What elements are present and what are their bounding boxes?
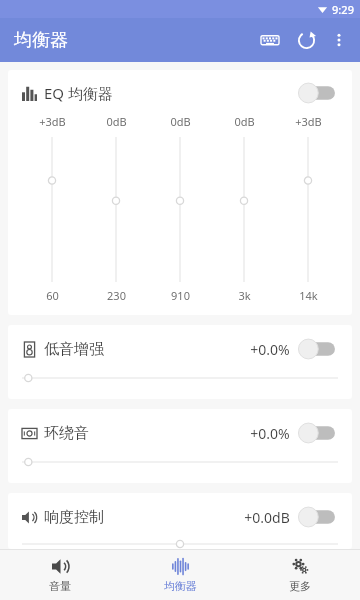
staticText: +0.0% [250, 340, 290, 359]
staticText: 环绕音 [44, 424, 89, 443]
staticText: 音量 [49, 579, 71, 593]
button[interactable]: Level slider [22, 539, 338, 549]
button[interactable]: 音量 [0, 550, 120, 600]
staticText: +0.0dB [244, 508, 290, 527]
button[interactable]: Level slider [22, 371, 338, 385]
staticText: 0dB [234, 114, 255, 129]
button[interactable]: 均衡器 [120, 550, 240, 600]
staticText: 60 [46, 288, 59, 303]
button[interactable]: Toggle [300, 82, 338, 104]
button[interactable]: More options [324, 25, 354, 55]
staticText: 低音增强 [44, 340, 104, 359]
staticText: EQ 均衡器 [44, 83, 113, 103]
staticText: +0.0% [250, 424, 290, 443]
button[interactable]: Band slider [234, 137, 254, 282]
staticText: 响度控制 [44, 508, 104, 527]
staticText: 均衡器 [14, 29, 68, 52]
staticText: 14k [299, 288, 318, 303]
staticText: +3dB [295, 114, 322, 129]
button[interactable]: Level slider [22, 455, 338, 469]
staticText: 均衡器 [164, 579, 197, 593]
button[interactable]: Toggle [300, 422, 338, 444]
button[interactable]: Band slider [170, 137, 190, 282]
staticText: 0dB [170, 114, 191, 129]
button[interactable]: Toggle [300, 506, 338, 528]
button[interactable]: Refresh [288, 22, 324, 58]
staticText: 910 [171, 288, 190, 303]
staticText: 更多 [289, 579, 311, 593]
button[interactable]: Band slider [42, 137, 62, 282]
staticText: 3k [238, 288, 251, 303]
staticText: 0dB [106, 114, 127, 129]
staticText: 9:29 [332, 2, 354, 17]
staticText: +3dB [39, 114, 66, 129]
button[interactable]: Keyboard [252, 22, 288, 58]
button[interactable]: 更多 [240, 550, 360, 600]
button[interactable]: Band slider [106, 137, 126, 282]
button[interactable]: Toggle [300, 338, 338, 360]
button[interactable]: Band slider [298, 137, 318, 282]
staticText: 230 [107, 288, 126, 303]
